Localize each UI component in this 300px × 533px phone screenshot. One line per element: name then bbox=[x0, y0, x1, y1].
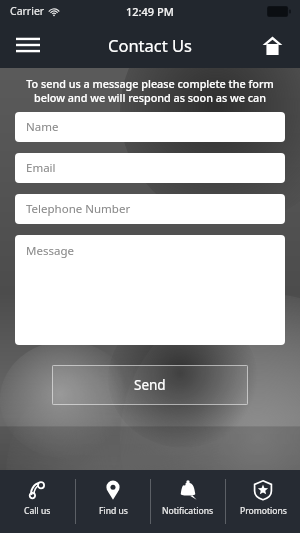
staticText: Notifications bbox=[162, 505, 214, 517]
button[interactable]: Telephone Number bbox=[15, 194, 285, 224]
button[interactable]: Name bbox=[15, 112, 285, 142]
staticText: Call us bbox=[24, 505, 51, 517]
button[interactable]: Home bbox=[252, 25, 292, 65]
button[interactable]: Notifications bbox=[151, 470, 225, 533]
button[interactable]: Call us bbox=[0, 470, 75, 533]
staticText: Telephone Number bbox=[26, 201, 131, 217]
staticText: Carrier bbox=[10, 4, 45, 18]
staticText: Contact Us bbox=[108, 34, 192, 56]
staticText: 12:49 PM bbox=[126, 4, 174, 19]
staticText: Email bbox=[26, 160, 56, 176]
button[interactable]: Message bbox=[15, 235, 285, 345]
staticText: Promotions bbox=[240, 505, 287, 517]
button[interactable]: Menu bbox=[8, 25, 48, 65]
staticText: Name bbox=[26, 119, 59, 135]
staticText: To send us a message please complete the… bbox=[14, 76, 286, 105]
button[interactable]: Email bbox=[15, 153, 285, 183]
button[interactable]: Promotions bbox=[226, 470, 300, 533]
button[interactable]: Send bbox=[52, 365, 248, 405]
button[interactable]: Find us bbox=[76, 470, 150, 533]
staticText: Message bbox=[26, 243, 74, 259]
staticText: Find us bbox=[99, 505, 128, 517]
staticText: Send bbox=[134, 376, 166, 394]
